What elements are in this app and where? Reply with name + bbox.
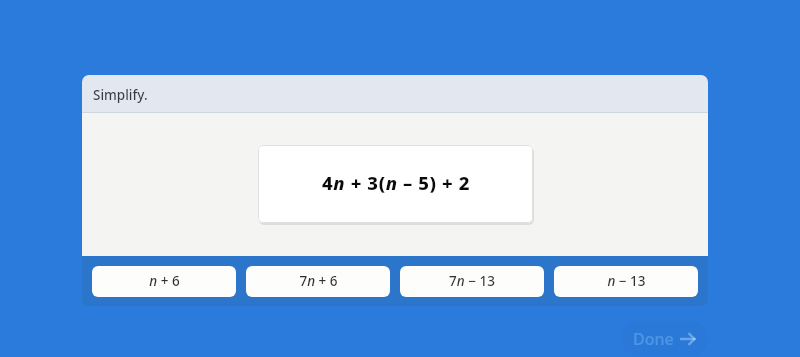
staticText: n − 13 [607, 272, 646, 290]
staticText: Done [633, 328, 674, 350]
other: Next [680, 331, 696, 347]
staticText: 7n − 13 [449, 272, 495, 290]
button[interactable]: 7n − 13 [400, 266, 544, 297]
button[interactable]: n − 13 [554, 266, 698, 297]
button[interactable]: 7n + 6 [246, 266, 390, 297]
staticText: 4n + 3(n – 5) + 2 [322, 170, 470, 195]
staticText: n + 6 [149, 272, 180, 290]
button[interactable]: n + 6 [92, 266, 236, 297]
button[interactable]: Done [621, 321, 708, 356]
staticText: 7n + 6 [299, 272, 338, 290]
staticText: Simplify. [93, 86, 148, 104]
